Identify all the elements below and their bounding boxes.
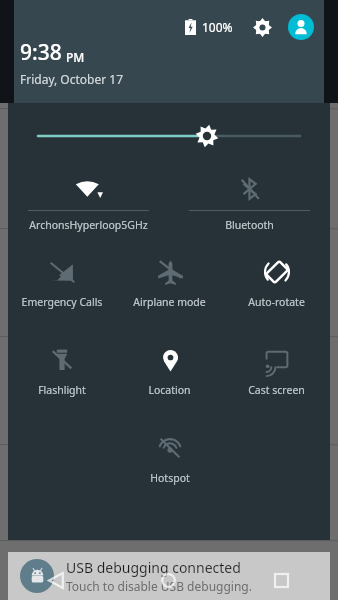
button[interactable]: Auto-rotate xyxy=(223,242,330,330)
staticText: Emergency Calls Only xyxy=(10,295,114,309)
button[interactable]: Flashlight xyxy=(8,330,116,418)
button[interactable]: Airplane mode xyxy=(116,242,223,330)
staticText: Cast screen xyxy=(248,383,305,397)
button[interactable]: Emergency Calls Only xyxy=(8,242,116,330)
button[interactable]: Cast screen xyxy=(223,330,330,418)
staticText: Auto-rotate xyxy=(248,295,305,309)
staticText: Friday, October 17 xyxy=(20,71,124,87)
button[interactable]: Hotspot xyxy=(116,418,223,506)
button[interactable]: Brightness xyxy=(8,103,330,168)
button[interactable]: Settings xyxy=(249,14,275,40)
staticText: ArchonsHyperloop5GHz xyxy=(29,218,148,232)
other: Battery charging xyxy=(185,19,196,35)
button[interactable]: ArchonsHyperloop5GHz xyxy=(8,168,169,242)
staticText: Touch to disable USB debugging. xyxy=(66,578,252,594)
staticText: 100% xyxy=(202,19,233,35)
button[interactable]: USB debugging connected xyxy=(8,552,330,600)
button[interactable]: Home xyxy=(112,560,225,600)
staticText: 9:38 xyxy=(20,38,62,67)
button[interactable]: Recent apps xyxy=(225,560,338,600)
staticText: USB debugging connected xyxy=(66,558,241,577)
staticText: PM xyxy=(66,49,85,65)
staticText: Hotspot xyxy=(150,471,190,485)
button[interactable]: User profile xyxy=(288,14,314,40)
staticText: Location xyxy=(148,383,191,397)
staticText: Airplane mode xyxy=(133,295,206,309)
button[interactable]: Back xyxy=(0,560,112,600)
staticText: Bluetooth xyxy=(225,218,274,232)
button[interactable]: 9:38 xyxy=(20,38,124,87)
staticText: Flashlight xyxy=(38,383,86,397)
button[interactable]: Bluetooth xyxy=(169,168,330,242)
button[interactable]: Location xyxy=(116,330,223,418)
